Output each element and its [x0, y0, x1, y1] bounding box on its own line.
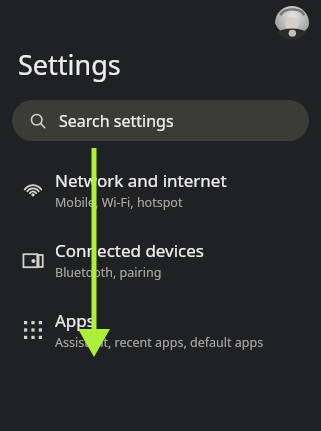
button[interactable]: Network and internet — [0, 169, 321, 211]
button[interactable]: Connected devices — [0, 239, 321, 281]
button[interactable]: Apps — [0, 309, 321, 351]
staticText: Mobile, Wi-Fi, hotspot — [55, 194, 183, 211]
staticText: Network and internet — [55, 169, 227, 192]
button[interactable]: Account — [275, 6, 309, 40]
staticText: Bluetooth, pairing — [55, 264, 162, 281]
staticText: Apps — [55, 309, 95, 332]
staticText: Assistant, recent apps, default apps — [55, 334, 264, 351]
button[interactable]: Search settings — [12, 100, 309, 141]
staticText: Settings — [18, 46, 121, 83]
staticText: Search settings — [59, 110, 174, 132]
staticText: Connected devices — [55, 239, 205, 262]
